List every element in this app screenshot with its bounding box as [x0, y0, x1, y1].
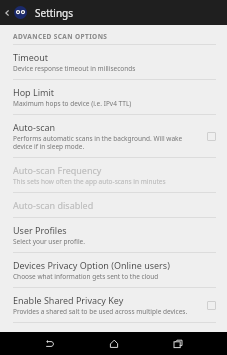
- staticText: Hop Limit: [13, 86, 55, 98]
- staticText: Device response timeout in milliseconds: [13, 64, 136, 73]
- button[interactable]: Auto-scan disabled: [0, 193, 227, 217]
- staticText: Devices Privacy Option (Online users): [13, 259, 170, 271]
- staticText: Auto-scan disabled: [13, 199, 94, 211]
- staticText: Settings: [35, 6, 74, 20]
- staticText: Timeout: [13, 51, 49, 63]
- button[interactable]: Timeout: [0, 45, 227, 79]
- button[interactable]: Devices Privacy Option (Online users): [0, 253, 227, 287]
- staticText: Auto-scan Frequency: [13, 164, 102, 176]
- button[interactable]: User Profiles: [0, 218, 227, 252]
- button[interactable]: Enable Shared Privacy Key: [0, 288, 227, 322]
- button[interactable]: Auto-scan Frequency: [0, 158, 227, 192]
- staticText: Performs automatic scans in the backgrou…: [13, 134, 201, 151]
- staticText: Maximum hops to device (i.e. IPv4 TTL): [13, 99, 132, 108]
- button[interactable]: Hop Limit: [0, 80, 227, 114]
- button[interactable]: Home: [103, 333, 125, 355]
- staticText: Enable Shared Privacy Key: [13, 294, 124, 306]
- staticText: Provides a shared salt to be used across…: [13, 307, 188, 316]
- button[interactable]: Navigate up: [0, 0, 13, 25]
- button[interactable]: Auto-scan: [0, 115, 227, 157]
- staticText: ADVANCED SCAN OPTIONS: [13, 32, 108, 41]
- button[interactable]: Back: [39, 333, 61, 355]
- button[interactable]: App logo: [13, 5, 28, 20]
- button[interactable]: Recent apps: [167, 333, 189, 355]
- staticText: User Profiles: [13, 224, 67, 236]
- staticText: This sets how often the app auto-scans i…: [13, 177, 166, 186]
- staticText: Select your user profile.: [13, 237, 86, 246]
- staticText: Choose what information gets sent to the…: [13, 272, 159, 281]
- staticText: Auto-scan: [13, 121, 56, 133]
